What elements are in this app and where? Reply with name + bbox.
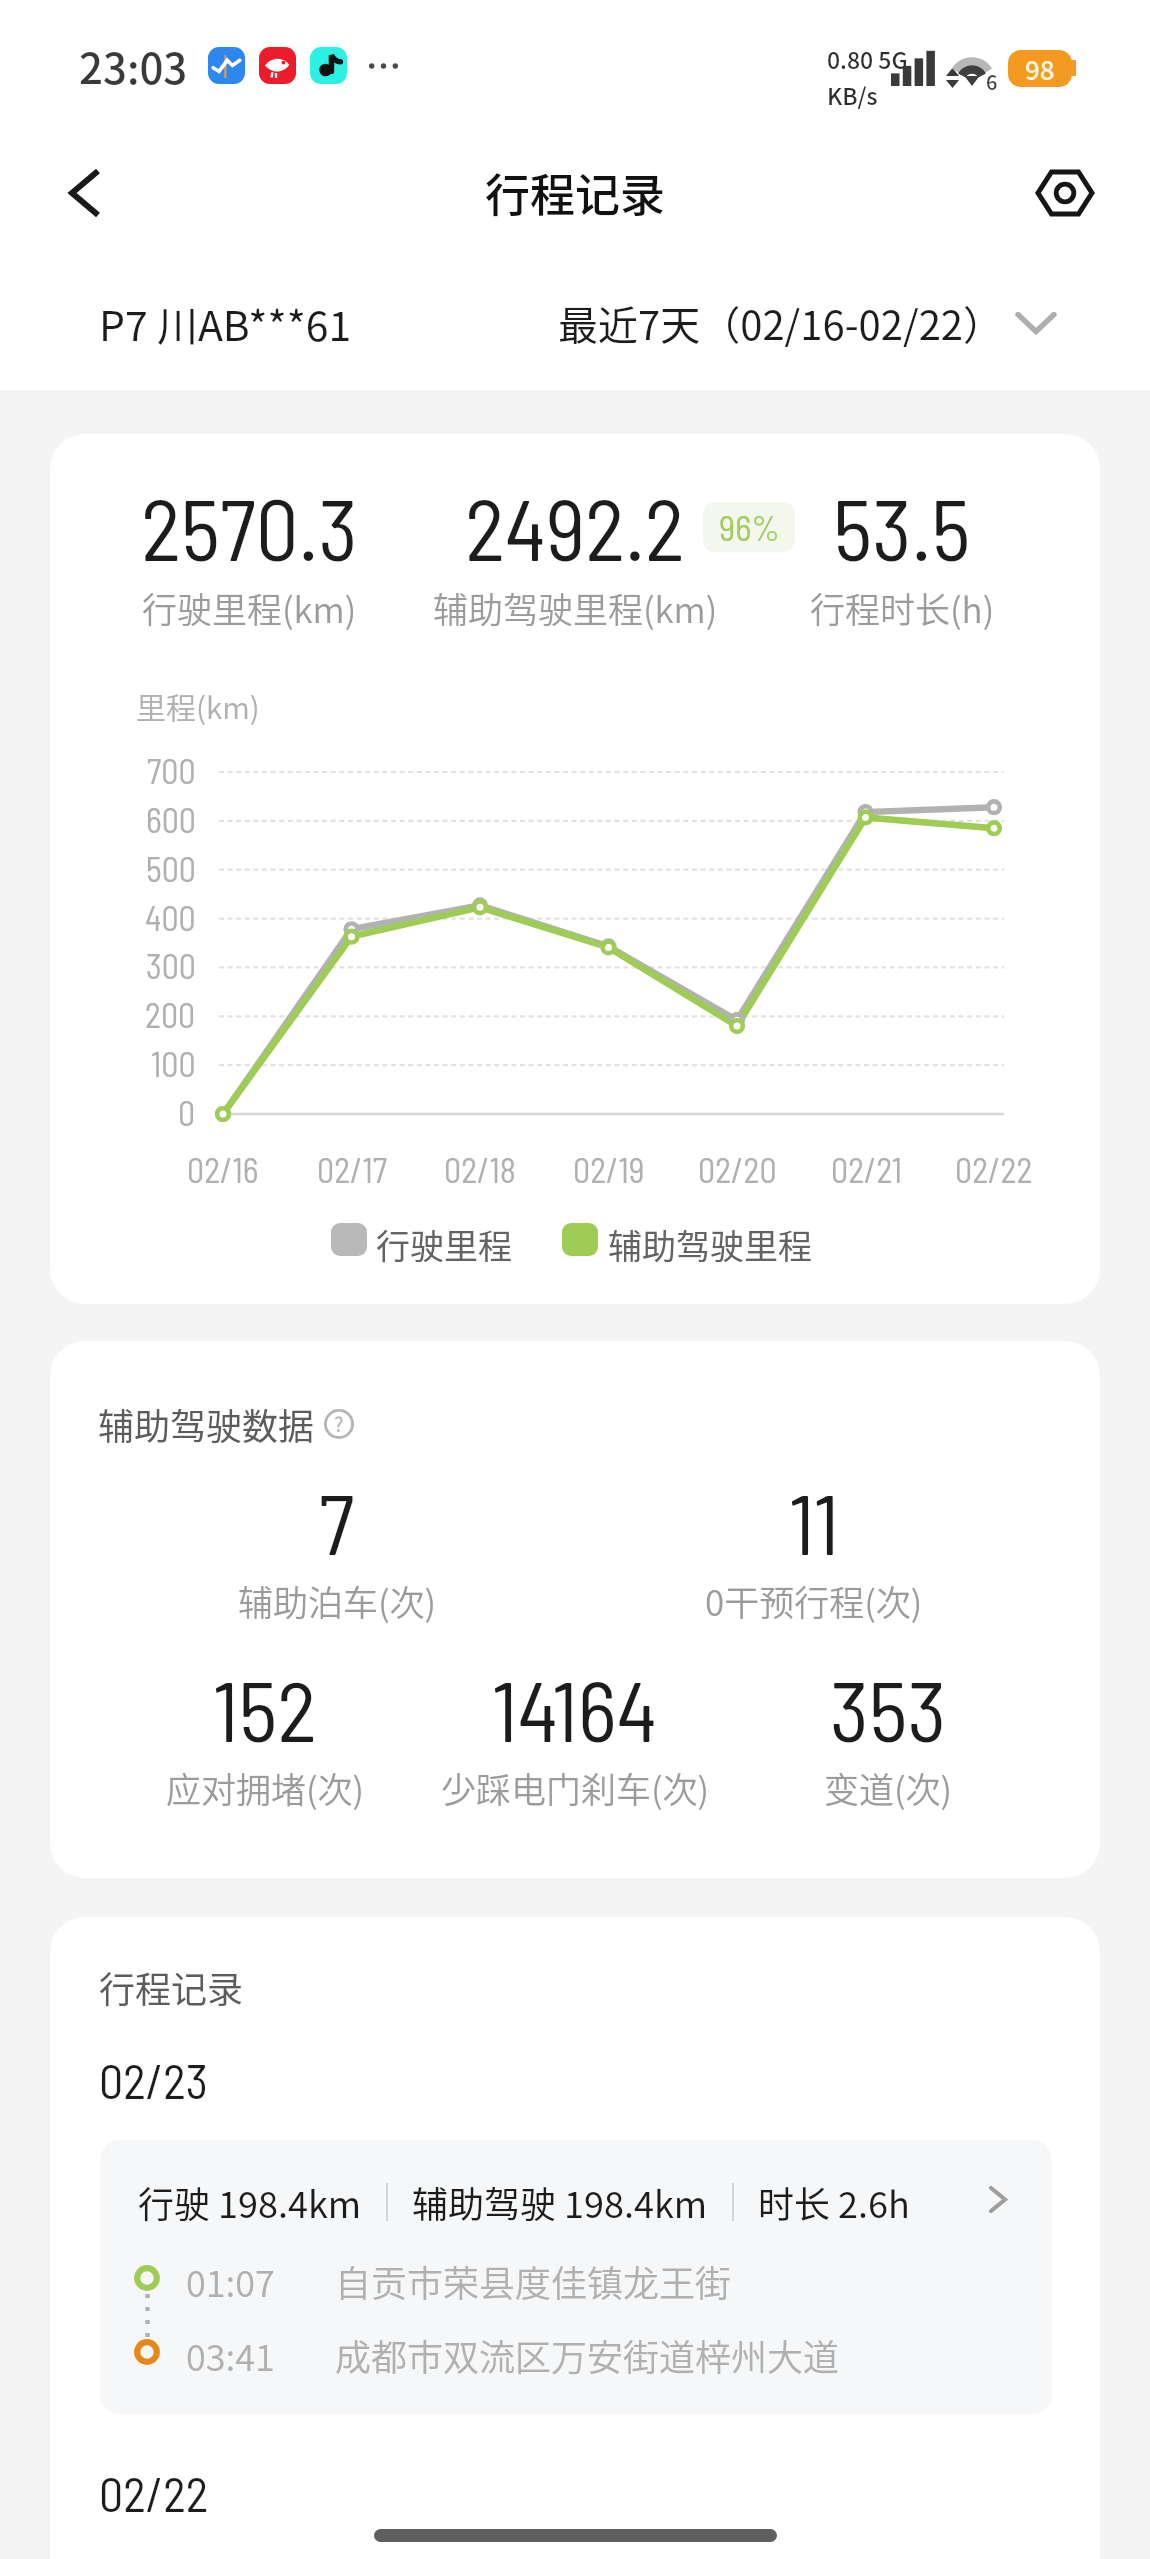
staticText: 53.5 [833,476,971,578]
staticText: 400 [145,897,196,938]
staticText: 成都市双流区万安街道梓州大道 [335,2329,840,2381]
staticText: 300 [146,945,196,986]
staticText: 02/23 [99,2051,208,2109]
staticText: 行程时长(h) [810,582,995,633]
staticText: 辅助驾驶里程 [608,1220,812,1269]
staticText: 500 [146,848,196,889]
staticText: 100 [151,1043,196,1084]
staticText: 变道(次) [824,1762,953,1813]
button[interactable]: Settings [1010,138,1120,248]
staticText: 时长 2.6h [758,2176,910,2228]
staticText: 0.80 5G [827,42,908,75]
staticText: 2570.3 [141,476,358,578]
staticText: 96% [719,506,780,548]
staticText: 02/21 [831,1149,902,1190]
staticText: 应对拥堵(次) [166,1762,365,1813]
staticText: 03:41 [186,2329,275,2381]
staticText: 600 [146,799,196,840]
staticText: 14164 [492,1658,658,1759]
staticText: ? [334,1409,344,1438]
staticText: P7 川AB***61 [99,293,352,352]
staticText: 辅助驾驶 198.4km [412,2176,708,2228]
staticText: 200 [145,994,196,1035]
staticText: 02/22 [955,1149,1033,1190]
button[interactable]: 最近7天（02/16-02/22） [558,294,1054,352]
staticText: 行驶 198.4km [138,2176,362,2228]
staticText: 353 [830,1658,947,1759]
button[interactable]: Back [30,138,140,248]
staticText: 辅助泊车(次) [238,1575,437,1626]
staticText: 0干预行程(次) [705,1575,923,1626]
staticText: 02/22 [99,2464,209,2522]
staticText: 行驶里程(km) [142,582,357,633]
staticText: 里程(km) [136,684,260,727]
staticText: 少踩电门刹车(次) [441,1762,710,1813]
staticText: 98 [1025,50,1055,87]
staticText: 6 [986,67,998,96]
staticText: 辅助驾驶数据 [98,1398,315,1450]
staticText: 行程记录 [485,160,666,225]
staticText: 2492.2 [465,476,685,578]
staticText: 最近7天（02/16-02/22） [558,294,1004,352]
staticText: 700 [147,750,196,791]
staticText: 自贡市荣县度佳镇龙王街 [335,2255,732,2307]
staticText: 行程记录 [99,1961,244,2013]
staticText: 02/18 [444,1149,516,1190]
staticText: 行驶里程 [376,1220,512,1269]
staticText: 11 [789,1471,840,1572]
staticText: 辅助驾驶里程(km) [433,582,718,633]
staticText: 7 [319,1471,355,1572]
staticText: 02/16 [187,1149,259,1190]
staticText: 02/17 [317,1149,388,1190]
staticText: 02/19 [573,1149,645,1190]
staticText: 02/20 [698,1149,777,1190]
button[interactable]: 行驶 198.4km [100,2140,1052,2414]
staticText: KB/s [827,78,878,111]
staticText: 23:03 [79,35,188,96]
staticText: 152 [213,1658,317,1759]
staticText: 0 [178,1092,196,1133]
staticText: 01:07 [186,2255,275,2307]
